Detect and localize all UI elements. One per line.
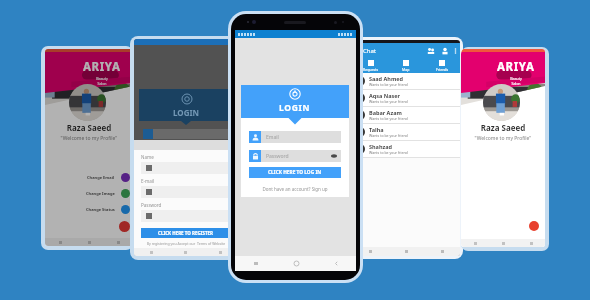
staticText: is Chat: [357, 47, 377, 55]
staticText: LOGIN: [173, 107, 200, 118]
button[interactable]: Edit profile: [529, 221, 539, 231]
button[interactable]: Change Image: [83, 189, 130, 198]
staticText: Email: [266, 134, 279, 141]
staticText: Raza Saeed: [461, 122, 545, 133]
staticText: "Welcome to my Profile": [45, 135, 133, 142]
button[interactable]: Saad Ahmed: [353, 73, 460, 89]
button[interactable]: Map: [388, 58, 424, 73]
button[interactable]: Profile: [441, 47, 449, 55]
staticText: Shahzad: [369, 143, 392, 150]
button[interactable]: Requests: [353, 58, 388, 73]
staticText: Change Image: [86, 191, 115, 196]
staticText: Aqsa Naser: [369, 92, 401, 99]
button[interactable]: More options: [454, 47, 457, 55]
button[interactable]: Add group: [427, 47, 435, 55]
staticText: Saad Ahmed: [369, 75, 404, 82]
staticText: CLICK HERE TO REGISTER: [158, 230, 214, 236]
staticText: Requests: [363, 67, 379, 72]
staticText: ARIYA: [497, 59, 535, 75]
staticText: Name: [141, 154, 154, 160]
button[interactable]: Dont have an account? Sign up: [249, 186, 341, 192]
staticText: Change Status: [86, 207, 115, 212]
staticText: By registering you Accept our Terms of W…: [141, 241, 231, 246]
staticText: Password: [266, 153, 289, 160]
button[interactable]: CLICK HERE TO REGISTER: [141, 228, 231, 238]
staticText: Wants to be your friend: [369, 82, 408, 87]
staticText: Beauty Salon: [96, 76, 108, 86]
button[interactable]: Shahzad: [353, 141, 460, 157]
button[interactable]: Close actions: [119, 221, 130, 232]
button[interactable]: Friends: [424, 58, 460, 73]
button[interactable]: Show password: [331, 153, 337, 159]
staticText: "Welcome to my Profile": [461, 135, 545, 142]
staticText: Wants to be your friend: [369, 133, 408, 138]
staticText: E-mail: [141, 178, 155, 184]
button[interactable]: Change Status: [83, 205, 130, 214]
staticText: Babar Azam: [369, 109, 402, 116]
button[interactable]: Babar Azam: [353, 107, 460, 123]
staticText: Talha: [369, 126, 384, 133]
button[interactable]: CLICK HERE TO LOG IN: [249, 167, 341, 178]
staticText: LOGIN: [279, 102, 311, 114]
staticText: Map: [402, 67, 410, 72]
staticText: Change Email: [87, 175, 115, 180]
staticText: Wants to be your friend: [369, 116, 408, 121]
staticText: Wants to be your friend: [369, 150, 408, 155]
staticText: ARIYA: [83, 59, 121, 75]
staticText: CLICK HERE TO LOG IN: [268, 169, 322, 176]
button[interactable]: Talha: [353, 124, 460, 140]
staticText: Friends: [436, 67, 449, 72]
staticText: Password: [141, 202, 162, 208]
staticText: Wants to be your friend: [369, 99, 408, 104]
button[interactable]: Aqsa Naser: [353, 90, 460, 106]
button[interactable]: Change Email: [84, 173, 130, 182]
staticText: Beauty Salon: [510, 76, 522, 86]
staticText: Raza Saeed: [45, 122, 133, 133]
